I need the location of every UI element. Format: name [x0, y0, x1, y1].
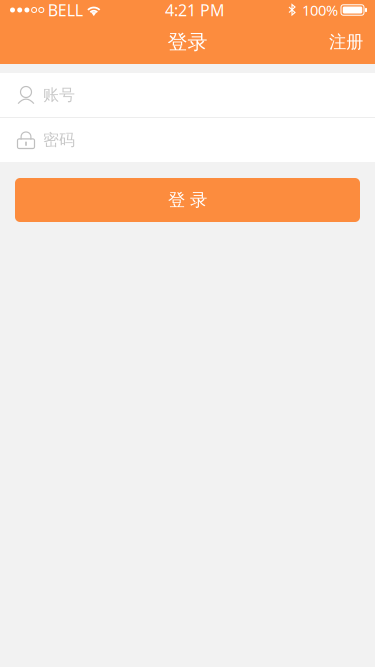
staticText: 登 录 — [168, 189, 207, 211]
staticText: 4:21 PM — [165, 0, 225, 21]
button[interactable]: 账号 — [0, 73, 375, 117]
staticText: 登录 — [167, 30, 207, 54]
button[interactable]: 登 录 — [15, 178, 360, 222]
staticText: 注册 — [329, 31, 363, 53]
button[interactable]: 注册 — [313, 20, 375, 64]
staticText: 账号 — [43, 85, 75, 105]
staticText: 密码 — [43, 130, 75, 150]
staticText: BELL — [48, 0, 83, 21]
staticText: 100% — [302, 0, 338, 20]
button[interactable]: 密码 — [0, 118, 375, 162]
